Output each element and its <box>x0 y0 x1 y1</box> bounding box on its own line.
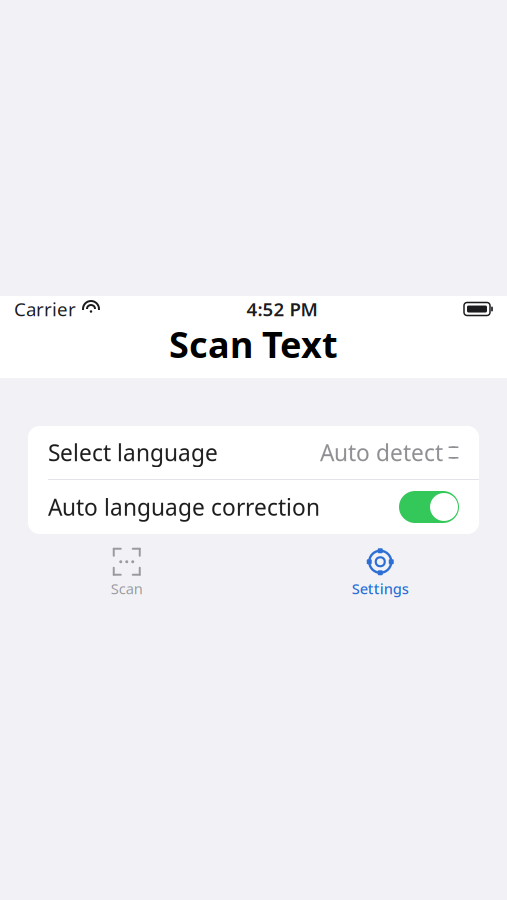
staticText: Scan <box>111 579 143 598</box>
button[interactable]: Auto language correction <box>28 480 479 534</box>
staticText: 4:52 PM <box>246 297 317 321</box>
staticText: Scan Text <box>169 320 338 368</box>
button[interactable]: Scan <box>0 542 253 604</box>
staticText: Carrier <box>14 297 76 321</box>
staticText: Settings <box>352 579 409 598</box>
button[interactable]: Settings <box>253 542 507 604</box>
staticText: Auto detect <box>320 437 443 467</box>
staticText: Auto language correction <box>48 492 320 522</box>
staticText: Select language <box>48 437 218 467</box>
button[interactable]: Select language <box>28 426 479 479</box>
